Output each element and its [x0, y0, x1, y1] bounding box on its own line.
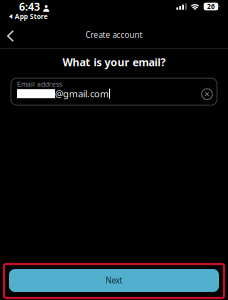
- staticText: Email address: [17, 80, 62, 89]
- staticText: Next: [105, 275, 122, 286]
- staticText: App Store: [15, 12, 48, 21]
- staticText: @gmail.com: [55, 87, 109, 100]
- button[interactable]: Back: [0, 24, 21, 44]
- staticText: 26: [207, 2, 215, 11]
- staticText: 6:43: [19, 0, 40, 14]
- button[interactable]: Next: [9, 269, 219, 292]
- button[interactable]: Clear text: [201, 88, 213, 100]
- staticText: What is your email?: [62, 55, 165, 69]
- staticText: Create account: [85, 30, 142, 40]
